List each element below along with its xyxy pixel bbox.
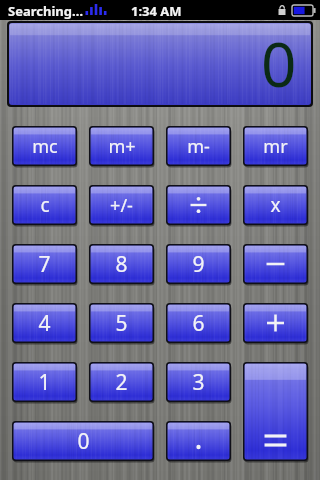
staticText: Searching… bbox=[8, 2, 84, 20]
button[interactable]: +/- bbox=[89, 185, 154, 225]
button[interactable]: m+ bbox=[89, 126, 154, 166]
button[interactable]: mc bbox=[12, 126, 77, 166]
staticText: 7 bbox=[38, 250, 51, 279]
button[interactable]: mr bbox=[243, 126, 308, 166]
staticText: 0 bbox=[77, 427, 90, 456]
button[interactable]: m- bbox=[166, 126, 231, 166]
staticText: m+ bbox=[108, 134, 136, 159]
button[interactable]: Decimal point bbox=[166, 421, 231, 461]
staticText: 3 bbox=[192, 368, 205, 397]
button[interactable]: 9 bbox=[166, 244, 231, 284]
staticText: 5 bbox=[115, 309, 128, 338]
staticText: 2 bbox=[115, 368, 128, 397]
button[interactable]: x bbox=[243, 185, 308, 225]
button[interactable]: 8 bbox=[89, 244, 154, 284]
staticText: mr bbox=[263, 134, 288, 159]
button[interactable]: 4 bbox=[12, 303, 77, 343]
staticText: 1:34 AM bbox=[131, 2, 182, 20]
staticText: x bbox=[270, 192, 281, 218]
staticText: 8 bbox=[115, 250, 128, 279]
button[interactable]: c bbox=[12, 185, 77, 225]
button[interactable]: 1 bbox=[12, 362, 77, 402]
staticText: mc bbox=[32, 134, 58, 159]
button[interactable]: 2 bbox=[89, 362, 154, 402]
button[interactable]: 3 bbox=[166, 362, 231, 402]
staticText: m- bbox=[187, 134, 210, 159]
button[interactable]: Minus bbox=[243, 244, 308, 284]
staticText: 9 bbox=[192, 250, 205, 279]
button[interactable]: 6 bbox=[166, 303, 231, 343]
staticText: 1 bbox=[38, 368, 51, 397]
button[interactable]: 0 bbox=[12, 421, 154, 461]
staticText: 4 bbox=[38, 309, 51, 338]
staticText: +/- bbox=[110, 193, 133, 218]
staticText: 6 bbox=[192, 309, 205, 338]
button[interactable]: Plus bbox=[243, 303, 308, 343]
button[interactable]: Divide bbox=[166, 185, 231, 225]
staticText: 0 bbox=[261, 21, 297, 105]
button[interactable]: 5 bbox=[89, 303, 154, 343]
staticText: c bbox=[40, 192, 50, 218]
button[interactable]: Equals bbox=[243, 362, 308, 461]
button[interactable]: 7 bbox=[12, 244, 77, 284]
